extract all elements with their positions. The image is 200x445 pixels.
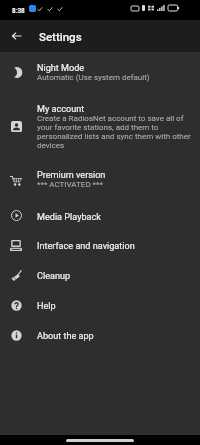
staticText: About the app [37, 331, 94, 342]
button[interactable]: About the app [0, 320, 200, 350]
button[interactable]: Back [5, 25, 27, 47]
button[interactable]: Night Mode [0, 52, 200, 93]
staticText: My account [37, 104, 85, 115]
staticText: Automatic (Use system default) [37, 73, 150, 82]
staticText: *** ACTIVATED *** [37, 180, 103, 189]
staticText: Interface and navigation [37, 241, 135, 252]
staticText: Night Mode [37, 63, 85, 74]
button[interactable]: Interface and navigation [0, 230, 200, 260]
staticText: Settings [39, 30, 82, 43]
staticText: 8:38 [12, 7, 25, 15]
staticText: Cleanup [37, 271, 71, 282]
staticText: Premium version [37, 170, 106, 181]
staticText: Help [37, 301, 56, 312]
staticText: Create a RadiosNet account to save all o… [37, 114, 197, 150]
button[interactable]: Media Playback [0, 201, 200, 230]
button[interactable]: Cleanup [0, 260, 200, 290]
button[interactable]: Premium version [0, 159, 200, 201]
staticText: Media Playback [37, 212, 101, 223]
button[interactable]: My account [0, 93, 200, 159]
button[interactable]: Help [0, 290, 200, 320]
